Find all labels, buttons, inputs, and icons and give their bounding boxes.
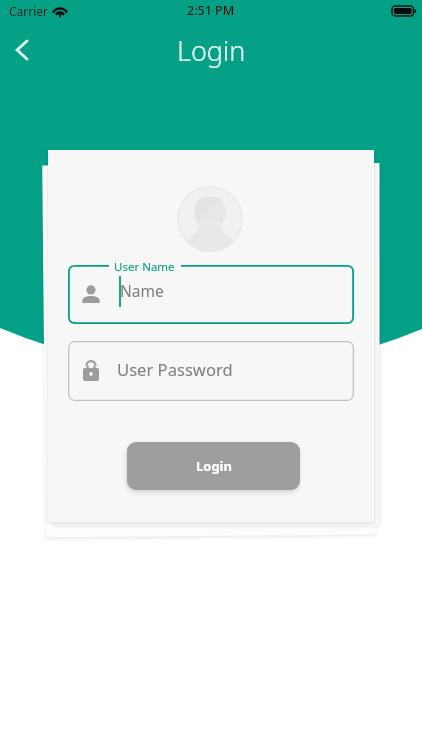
staticText: Name — [120, 280, 164, 301]
staticText: Login — [196, 457, 232, 475]
button[interactable]: Login — [127, 442, 300, 490]
button[interactable]: User Password — [68, 341, 354, 401]
staticText: User Password — [117, 358, 233, 381]
staticText: User Name — [114, 259, 175, 275]
button[interactable]: Back — [3, 30, 43, 70]
staticText: 2:51 PM — [187, 2, 235, 19]
button[interactable]: Name — [68, 265, 354, 324]
staticText: Carrier — [9, 3, 49, 19]
staticText: Login — [177, 32, 246, 69]
